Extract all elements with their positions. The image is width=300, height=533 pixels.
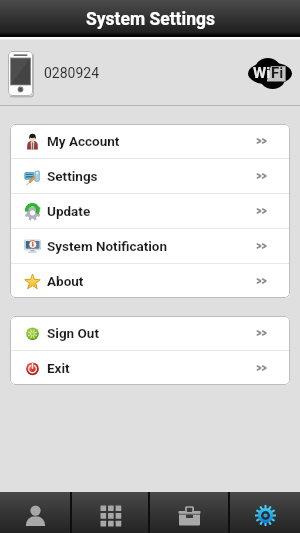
staticText: Update (47, 203, 91, 219)
button[interactable]: Tools (150, 492, 228, 533)
staticText: Settings (47, 168, 98, 184)
staticText: Wi (253, 64, 271, 82)
button[interactable]: Exit (10, 351, 290, 385)
button[interactable]: System Notification (10, 229, 290, 263)
button[interactable]: Contacts (0, 492, 70, 533)
staticText: 0280924 (44, 65, 100, 81)
staticText: System Notification (47, 238, 168, 254)
staticText: Exit (47, 360, 70, 376)
staticText: My Account (47, 133, 120, 149)
button[interactable]: Sign Out (10, 316, 290, 350)
button[interactable]: About (10, 264, 290, 298)
staticText: System Settings (86, 9, 215, 30)
button[interactable]: Settings (10, 159, 290, 193)
button[interactable]: Settings (230, 492, 300, 533)
staticText: Fi (271, 64, 284, 82)
button[interactable]: My Account (10, 124, 290, 158)
staticText: Sign Out (47, 325, 99, 341)
button[interactable]: Update (10, 194, 290, 228)
staticText: About (47, 273, 84, 289)
button[interactable]: Apps (72, 492, 148, 533)
